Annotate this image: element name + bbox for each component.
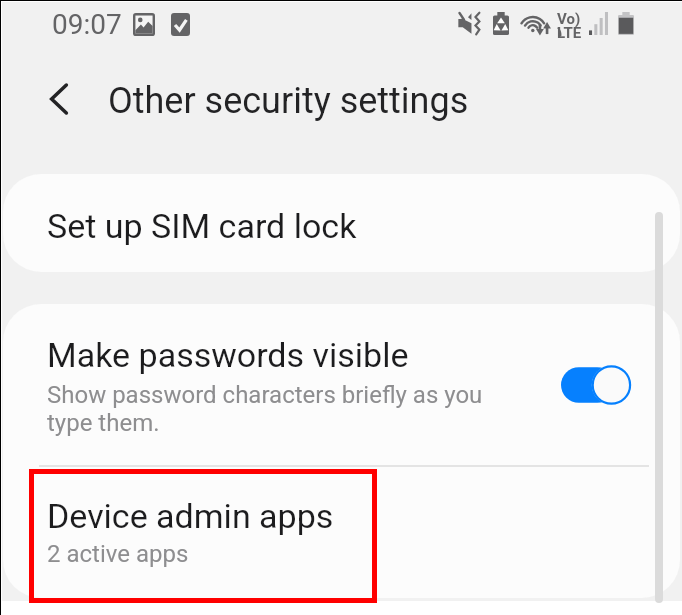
staticText: Other security settings <box>108 80 469 122</box>
staticText: LTE <box>557 24 582 42</box>
staticText: Device admin apps <box>47 496 334 536</box>
button[interactable]: Set up SIM card lock <box>3 174 680 272</box>
staticText: Set up SIM card lock <box>47 206 357 246</box>
button[interactable]: Make passwords visible toggle <box>550 355 642 415</box>
button[interactable]: Make passwords visible <box>3 304 680 465</box>
staticText: 2 active apps <box>47 540 189 568</box>
staticText: Vo)) <box>557 10 583 36</box>
button[interactable]: Navigate up <box>31 76 79 124</box>
staticText: Show password characters briefly as you … <box>47 381 499 437</box>
staticText: 09:07 <box>52 8 122 41</box>
staticText: Make passwords visible <box>47 335 409 375</box>
button[interactable]: Device admin apps <box>3 467 680 598</box>
